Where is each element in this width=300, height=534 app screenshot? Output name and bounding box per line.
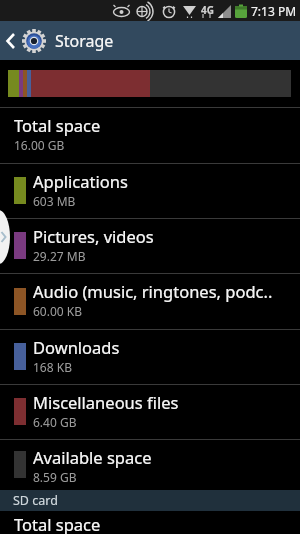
staticText: 4G xyxy=(201,3,214,17)
button[interactable]: Total space xyxy=(0,107,300,163)
button[interactable]: Pictures, videos xyxy=(0,218,300,273)
staticText: 60.00 KB xyxy=(33,303,83,319)
staticText: Available space xyxy=(33,446,152,468)
staticText: Total space xyxy=(14,114,101,136)
staticText: 7:13 PM xyxy=(251,3,297,19)
staticText: Storage xyxy=(55,30,114,52)
staticText: SD card xyxy=(13,492,58,509)
button[interactable]: Available space xyxy=(0,439,300,490)
staticText: Miscellaneous files xyxy=(33,391,179,413)
staticText: Audio (music, ringtones, podc.. xyxy=(33,280,273,302)
staticText: Downloads xyxy=(33,336,120,358)
staticText: Total space xyxy=(14,513,101,534)
button[interactable]: Storage xyxy=(0,21,300,60)
button[interactable]: Applications xyxy=(0,163,300,218)
staticText: 168 KB xyxy=(33,359,72,375)
button[interactable]: Total space xyxy=(0,511,300,534)
button[interactable]: Miscellaneous files xyxy=(0,384,300,439)
staticText: 16.00 GB xyxy=(14,137,65,153)
button[interactable]: Downloads xyxy=(0,329,300,384)
staticText: 603 MB xyxy=(33,193,76,209)
staticText: Applications xyxy=(33,170,128,192)
staticText: 29.27 MB xyxy=(33,248,86,264)
staticText: 8.59 GB xyxy=(33,469,77,485)
staticText: 6.40 GB xyxy=(33,414,77,430)
button[interactable]: Audio (music, ringtones, podc.. xyxy=(0,273,300,329)
staticText: Pictures, videos xyxy=(33,225,154,247)
